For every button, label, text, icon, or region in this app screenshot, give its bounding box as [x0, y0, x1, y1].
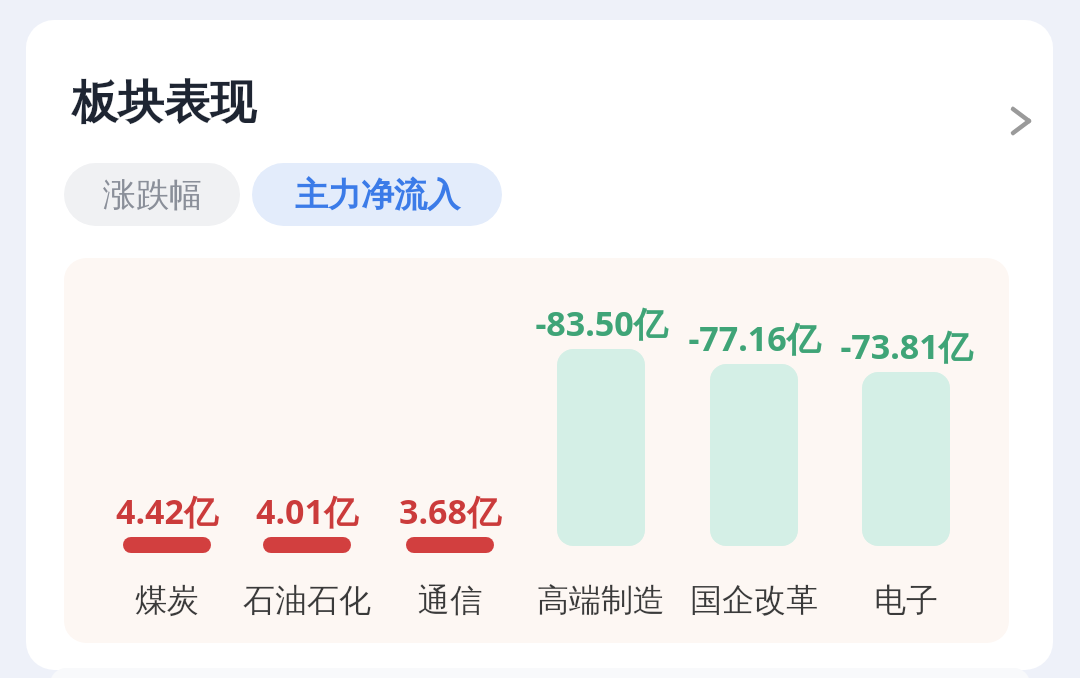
button[interactable]: 煤炭	[64, 577, 277, 623]
button[interactable]: 板块表现	[72, 74, 256, 132]
button[interactable]: 国企改革	[644, 577, 864, 623]
staticText: -77.16亿	[688, 315, 821, 361]
button[interactable]	[557, 349, 645, 546]
staticText: 板块表现	[72, 74, 256, 132]
staticText: -83.50亿	[535, 300, 668, 346]
staticText: 通信	[418, 580, 482, 620]
staticText: 主力净流入	[295, 174, 460, 216]
button[interactable]: 涨跌幅	[64, 163, 240, 226]
staticText: 高端制造	[537, 580, 665, 620]
staticText: 石油石化	[243, 580, 371, 620]
button[interactable]	[862, 372, 950, 546]
button[interactable]	[263, 537, 351, 553]
staticText: 4.01亿	[256, 488, 358, 534]
button[interactable]: 通信	[340, 577, 560, 623]
staticText: 电子	[874, 580, 938, 620]
staticText: 3.68亿	[399, 488, 501, 534]
staticText: -73.81亿	[840, 323, 973, 369]
button[interactable]: 主力净流入	[252, 163, 502, 226]
button[interactable]	[710, 364, 798, 546]
staticText: 涨跌幅	[103, 174, 202, 216]
button[interactable]: 查看更多板块表现	[976, 76, 1053, 166]
button[interactable]: 高端制造	[491, 577, 711, 623]
button[interactable]: 石油石化	[197, 577, 417, 623]
button[interactable]	[123, 537, 211, 553]
staticText: 国企改革	[690, 580, 818, 620]
staticText: 4.42亿	[116, 488, 218, 534]
button[interactable]	[406, 537, 494, 553]
staticText: 煤炭	[135, 580, 199, 620]
button[interactable]: 电子	[796, 577, 1009, 623]
